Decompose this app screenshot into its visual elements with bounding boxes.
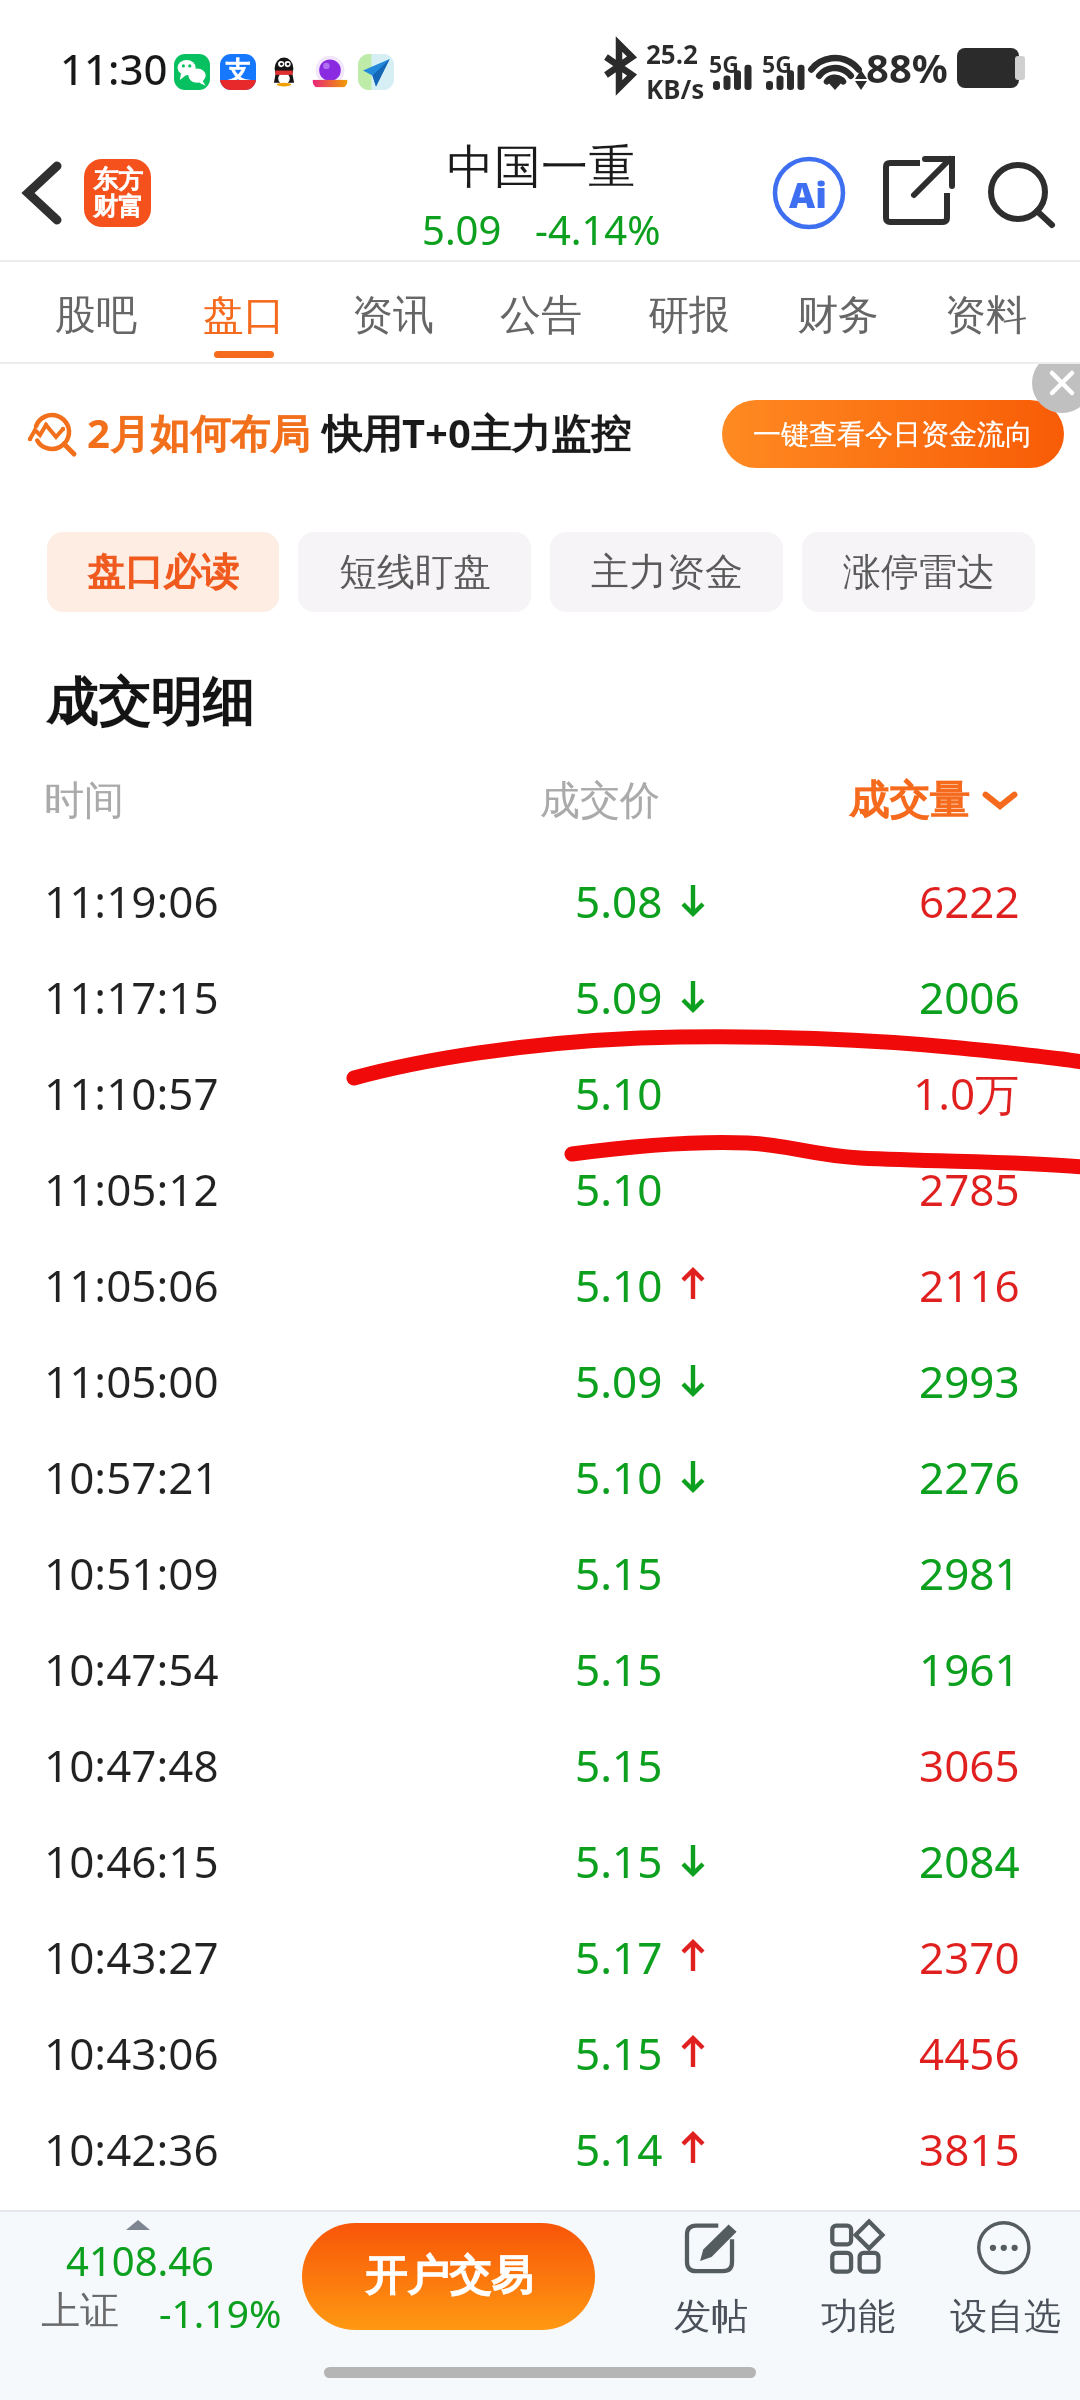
button[interactable]: 成交量	[849, 775, 1019, 825]
staticText: 2084	[919, 1831, 1020, 1891]
staticText: 5.15	[575, 1639, 663, 1699]
staticText: 88%	[866, 40, 948, 94]
staticText: 4108.46	[66, 2233, 214, 2287]
staticText: 5.09	[422, 202, 502, 256]
staticText: 5.15	[575, 1735, 663, 1795]
staticText: 资料	[945, 290, 1027, 342]
button[interactable]: 10:47:54	[0, 1618, 1080, 1712]
staticText: 5.10	[575, 1159, 663, 1219]
button[interactable]: 10:51:09	[0, 1522, 1080, 1616]
button[interactable]: 11:10:57	[0, 1042, 1080, 1136]
button[interactable]: 11:05:00	[0, 1330, 1080, 1424]
staticText: 2006	[919, 967, 1020, 1027]
staticText: 5.09	[575, 1351, 663, 1411]
button[interactable]: 一键查看今日资金流向	[722, 400, 1064, 468]
button[interactable]: 4108.46	[41, 2226, 271, 2338]
button[interactable]: 研报	[648, 260, 730, 364]
staticText: 快用T+0主力监控	[322, 405, 631, 460]
staticText: 5.15	[575, 1831, 663, 1891]
button[interactable]: 11:05:12	[0, 1138, 1080, 1232]
staticText: 资讯	[352, 290, 434, 342]
staticText: 公告	[500, 290, 582, 342]
staticText: 2981	[919, 1543, 1020, 1603]
staticText: 5.09	[575, 967, 663, 1027]
button[interactable]: 设自选	[935, 2221, 1075, 2340]
staticText: 10:47:48	[44, 1735, 219, 1795]
staticText: 5G	[709, 48, 739, 79]
button[interactable]: 主力资金	[550, 532, 783, 612]
button[interactable]: 短线盯盘	[298, 532, 531, 612]
staticText: 5.17	[575, 1927, 663, 1987]
staticText: 6222	[919, 871, 1020, 931]
button[interactable]: Back	[0, 150, 85, 235]
staticText: 5.14	[575, 2119, 663, 2179]
button[interactable]: Share	[880, 155, 954, 229]
staticText: 成交量	[849, 775, 969, 825]
staticText: 发帖	[674, 2293, 748, 2340]
staticText: 5.15	[575, 1543, 663, 1603]
staticText: 短线盯盘	[339, 548, 491, 596]
button[interactable]: 功能	[788, 2221, 928, 2340]
button[interactable]: 开户交易	[302, 2223, 595, 2330]
staticText: 5G	[762, 48, 792, 79]
button[interactable]: 11:05:06	[0, 1234, 1080, 1328]
button[interactable]: 10:47:48	[0, 1714, 1080, 1808]
staticText: 11:30	[60, 40, 168, 97]
staticText: -4.14%	[535, 202, 661, 256]
button[interactable]: 10:43:27	[0, 1906, 1080, 2000]
staticText: 中国一重	[447, 138, 635, 197]
staticText: KB/s	[646, 71, 705, 106]
staticText: 主力资金	[591, 548, 743, 596]
button[interactable]: 盘口必读	[47, 532, 279, 612]
staticText: 成交明细	[46, 670, 254, 736]
staticText: 5.15	[575, 2023, 663, 2083]
staticText: 股吧	[55, 290, 137, 342]
staticText: 11:05:00	[44, 1351, 219, 1411]
button[interactable]: East Money home	[84, 159, 151, 227]
button[interactable]: 资料	[945, 260, 1027, 364]
staticText: 11:19:06	[44, 871, 219, 931]
staticText: 10:43:27	[44, 1927, 219, 1987]
staticText: 1961	[919, 1639, 1020, 1699]
staticText: 成交价	[540, 775, 660, 825]
staticText: 2993	[919, 1351, 1020, 1411]
button[interactable]: 资讯	[352, 260, 434, 364]
staticText: 1.0万	[913, 1063, 1020, 1123]
button[interactable]: 11:17:15	[0, 946, 1080, 1040]
button[interactable]: 财务	[797, 260, 879, 364]
staticText: 11:05:12	[44, 1159, 219, 1219]
button[interactable]: 发帖	[641, 2221, 781, 2340]
staticText: 2276	[919, 1447, 1020, 1507]
staticText: 10:42:36	[44, 2119, 219, 2179]
staticText: 时间	[44, 775, 124, 825]
staticText: 5.10	[575, 1063, 663, 1123]
staticText: 5.10	[575, 1447, 663, 1507]
button[interactable]: 10:43:06	[0, 2002, 1080, 2096]
staticText: 上证	[41, 2286, 119, 2335]
staticText: 支	[225, 55, 251, 88]
button[interactable]: 10:42:36	[0, 2098, 1080, 2192]
staticText: 功能	[821, 2293, 895, 2340]
button[interactable]: Close banner	[1032, 364, 1080, 413]
button[interactable]: 涨停雷达	[802, 532, 1035, 612]
staticText: 设自选	[950, 2293, 1061, 2340]
staticText: 5.08	[575, 871, 663, 931]
staticText: 财务	[797, 290, 879, 342]
staticText: 11:05:06	[44, 1255, 219, 1315]
button[interactable]: 11:19:06	[0, 850, 1080, 944]
button[interactable]: Search	[980, 155, 1060, 235]
staticText: 盘口必读	[87, 548, 239, 596]
button[interactable]: 股吧	[55, 260, 137, 364]
button[interactable]: AI assistant	[773, 157, 846, 230]
staticText: 2785	[919, 1159, 1020, 1219]
button[interactable]: 公告	[500, 260, 582, 364]
button[interactable]: 10:46:15	[0, 1810, 1080, 1904]
staticText: 10:51:09	[44, 1543, 219, 1603]
staticText: 10:57:21	[44, 1447, 219, 1507]
staticText: 东方 财富	[93, 164, 143, 223]
button[interactable]: 盘口	[203, 260, 285, 364]
button[interactable]: 10:57:21	[0, 1426, 1080, 1520]
staticText: 4456	[919, 2023, 1020, 2083]
staticText: 研报	[648, 290, 730, 342]
staticText: 2370	[919, 1927, 1020, 1987]
